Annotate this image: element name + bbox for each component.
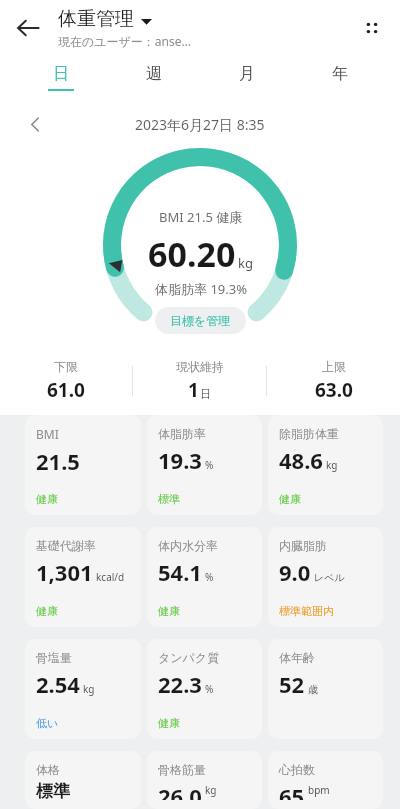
staticText: 体格 [36, 762, 60, 777]
staticText: 除脂肪体重 [279, 426, 339, 441]
staticText: 骨格筋量 [158, 762, 206, 777]
staticText: 標準範囲内 [279, 604, 334, 618]
staticText: 歳 [308, 683, 318, 696]
staticText: BMI 21.5 健康 [159, 208, 243, 226]
staticText: 骨塩量 [36, 650, 72, 665]
staticText: 内臓脂肪 [279, 538, 327, 553]
staticText: 体内水分率 [158, 538, 218, 553]
staticText: 日 [200, 387, 211, 401]
staticText: 標準 [158, 492, 180, 506]
staticText: kg [326, 458, 338, 472]
staticText: レベル [314, 571, 345, 584]
staticText: 心拍数 [279, 762, 315, 777]
staticText: % [205, 458, 214, 472]
staticText: kg [238, 254, 253, 272]
button[interactable]: Back [0, 0, 56, 56]
staticText: 年 [332, 64, 348, 84]
staticText: kg [205, 783, 217, 797]
button[interactable]: 体重管理 [58, 7, 344, 49]
staticText: タンパク質 [158, 650, 220, 665]
staticText: % [205, 682, 214, 696]
button[interactable]: 体脂肪率 [147, 415, 262, 515]
staticText: 健康 [36, 604, 58, 618]
staticText: 26.0 [158, 781, 202, 800]
staticText: 目標を管理 [170, 313, 231, 328]
staticText: 54.1 [158, 557, 202, 587]
button[interactable]: 骨塩量 [25, 639, 141, 739]
staticText: 日 [53, 64, 69, 84]
staticText: 現在のユーザー：anse… [58, 33, 191, 49]
button[interactable]: Previous day [22, 111, 48, 137]
button[interactable]: 現状維持 [133, 359, 266, 403]
button[interactable]: 下限 [0, 359, 132, 403]
staticText: 月 [239, 64, 255, 84]
button[interactable]: 体年齢 [268, 639, 383, 739]
button[interactable]: 体格 [25, 751, 141, 809]
staticText: BMI [36, 426, 59, 442]
staticText: 1,301 [36, 557, 93, 587]
staticText: 健康 [158, 716, 180, 730]
staticText: kcal/d [96, 570, 125, 584]
staticText: 体年齢 [279, 650, 315, 665]
staticText: % [205, 570, 214, 584]
staticText: 体脂肪率 [158, 426, 206, 441]
staticText: 体重管理 [58, 7, 134, 31]
staticText: 63.0 [315, 377, 353, 403]
staticText: 48.6 [279, 445, 323, 475]
staticText: 上限 [322, 359, 346, 374]
staticText: kg [83, 682, 95, 696]
staticText: 健康 [36, 492, 58, 506]
button[interactable]: 目標を管理 [155, 307, 246, 334]
button[interactable]: 基礎代謝率 [25, 527, 141, 627]
button[interactable]: 週 [107, 56, 200, 98]
button[interactable]: 日 [14, 56, 107, 98]
staticText: 65 [279, 781, 305, 800]
staticText: 低い [36, 716, 59, 730]
staticText: 61.0 [47, 377, 85, 403]
button[interactable]: 月 [200, 56, 293, 98]
button[interactable]: 内臓脂肪 [268, 527, 383, 627]
staticText: bpm [308, 783, 330, 797]
staticText: 60.20 [148, 231, 236, 277]
staticText: 体脂肪率 19.3% [155, 280, 247, 298]
staticText: 2023年6月27日 8:35 [135, 115, 265, 134]
button[interactable]: 上限 [267, 359, 400, 403]
staticText: 下限 [54, 359, 78, 374]
staticText: 健康 [158, 604, 180, 618]
staticText: 1 [188, 377, 199, 403]
staticText: 健康 [279, 492, 301, 506]
staticText: 19.3 [158, 445, 202, 475]
button[interactable]: タンパク質 [147, 639, 262, 739]
staticText: 現状維持 [176, 359, 224, 374]
staticText: 21.5 [36, 446, 80, 476]
button[interactable]: BMI [25, 415, 141, 515]
button[interactable]: 除脂肪体重 [268, 415, 383, 515]
staticText: 22.3 [158, 669, 202, 699]
staticText: 基礎代謝率 [36, 538, 96, 553]
staticText: 9.0 [279, 557, 311, 587]
staticText: 標準 [36, 781, 70, 800]
staticText: 2.54 [36, 669, 80, 699]
button[interactable]: More options [344, 0, 400, 56]
button[interactable]: 年 [293, 56, 386, 98]
button[interactable]: 体内水分率 [147, 527, 262, 627]
staticText: 52 [279, 669, 305, 699]
button[interactable]: 骨格筋量 [147, 751, 262, 809]
staticText: 週 [146, 64, 162, 84]
button[interactable]: 心拍数 [268, 751, 383, 809]
